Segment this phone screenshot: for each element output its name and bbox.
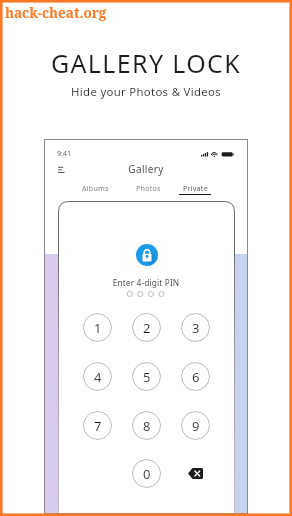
button[interactable]: 8 xyxy=(132,411,161,440)
staticText: GALLERY LOCK xyxy=(0,46,292,80)
staticText: 3 xyxy=(192,319,200,337)
staticText: 4 xyxy=(94,368,102,386)
staticText: 0 xyxy=(143,465,151,483)
staticText: Photos xyxy=(136,183,161,193)
button[interactable]: 6 xyxy=(181,362,210,391)
staticText: Hide your Photos & Videos xyxy=(0,84,292,100)
button[interactable]: 5 xyxy=(132,362,161,391)
staticText: Gallery xyxy=(45,162,247,176)
staticText: 8 xyxy=(143,417,151,435)
staticText: 5 xyxy=(143,368,151,386)
button[interactable]: Backspace xyxy=(181,459,210,488)
staticText: Albums xyxy=(82,183,109,193)
button[interactable]: 2 xyxy=(132,313,161,342)
button[interactable]: 4 xyxy=(83,362,112,391)
staticText: 1 xyxy=(94,319,102,337)
button[interactable]: Photos xyxy=(124,183,172,201)
staticText: Private xyxy=(183,183,208,193)
staticText: hack-cheat.org xyxy=(5,4,107,22)
staticText: 2 xyxy=(143,319,151,337)
staticText: 9:41 xyxy=(57,149,71,159)
button[interactable]: 7 xyxy=(83,411,112,440)
button[interactable]: 3 xyxy=(181,313,210,342)
staticText: 6 xyxy=(192,368,200,386)
button[interactable]: Private xyxy=(171,183,219,201)
button[interactable]: Albums xyxy=(71,183,119,201)
button[interactable]: 1 xyxy=(83,313,112,342)
staticText: Enter 4-digit PIN xyxy=(45,277,247,288)
staticText: 9 xyxy=(192,417,200,435)
button[interactable]: Menu xyxy=(56,164,68,176)
staticText: 7 xyxy=(94,417,102,435)
button[interactable]: 0 xyxy=(132,459,161,488)
button[interactable]: 9 xyxy=(181,411,210,440)
